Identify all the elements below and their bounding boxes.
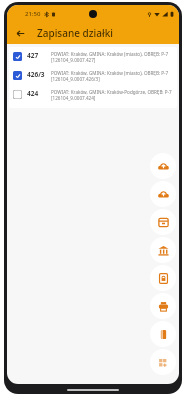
staticText: [126104_9.0007.424] (51, 95, 96, 101)
staticText: POWIAT: Kraków, GMINA: Kraków (miasto), … (51, 51, 169, 57)
button[interactable]: Download from cloud (150, 181, 176, 207)
staticText: 424 (27, 89, 47, 98)
staticText: Zapisane działki (37, 26, 113, 40)
staticText: 427 (27, 51, 47, 60)
button[interactable]: Book (150, 321, 176, 347)
button[interactable]: Unchecked (13, 90, 22, 99)
button[interactable]: Layers (150, 349, 176, 375)
staticText: [126104_9.0007.426/3] (51, 76, 100, 82)
button[interactable]: Checked (9, 66, 177, 85)
staticText: 426/3 (27, 70, 47, 79)
button[interactable]: Printer (150, 293, 176, 319)
button[interactable]: Unchecked (9, 85, 177, 104)
button[interactable]: Upload to cloud (150, 153, 176, 179)
staticText: POWIAT: Kraków, GMINA: Kraków (miasto), … (51, 70, 169, 76)
staticText: 21:50 (25, 10, 41, 18)
button[interactable]: Checked (13, 71, 22, 80)
button[interactable]: Back (12, 25, 28, 41)
button[interactable]: Document with lock (150, 265, 176, 291)
staticText: POWIAT: Kraków, GMINA: Kraków-Podgórze, … (51, 89, 172, 95)
button[interactable]: Institution (150, 237, 176, 263)
button[interactable]: Checked (13, 52, 22, 61)
button[interactable]: Registry (150, 209, 176, 235)
staticText: [126104_9.0007.427] (51, 57, 96, 63)
button[interactable]: Checked (9, 47, 177, 66)
